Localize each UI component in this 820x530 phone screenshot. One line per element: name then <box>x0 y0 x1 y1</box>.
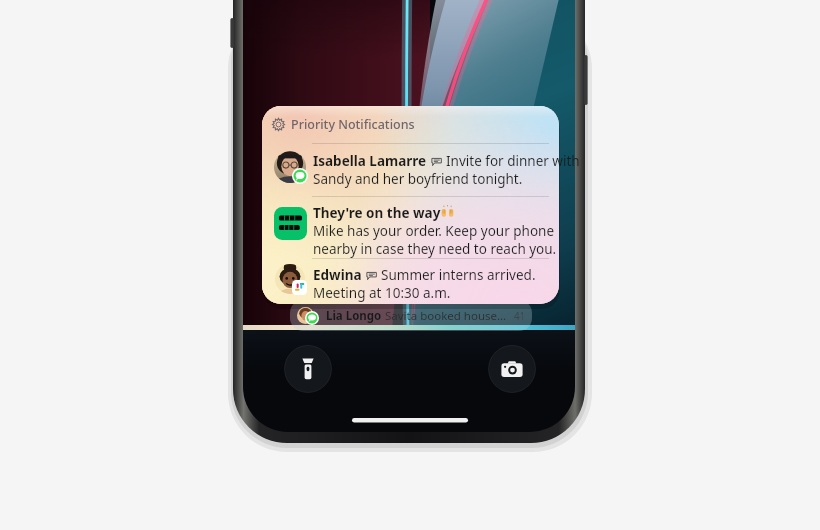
button[interactable]: Camera <box>488 345 536 393</box>
staticText: Priority Notifications <box>291 116 415 133</box>
staticText: nearby in case they need to reach you. <box>313 240 557 258</box>
staticText: Lia Longo <box>326 308 382 324</box>
staticText: Savita booked house… <box>385 308 507 324</box>
staticText: Isabella Lamarre <box>313 152 427 170</box>
button[interactable]: Edwina <box>262 261 559 304</box>
staticText: Sandy and her boyfriend tonight. <box>313 170 523 188</box>
staticText: Invite for dinner with <box>446 152 580 170</box>
button[interactable]: They're on the way <box>262 199 559 258</box>
staticText: Mike has your order. Keep your phone <box>313 222 555 240</box>
staticText: 41m ago <box>514 309 523 323</box>
button[interactable]: Lia Longo <box>290 300 532 331</box>
button[interactable]: Isabella Lamarre <box>262 146 559 196</box>
staticText: Meeting at 10:30 a.m. <box>313 284 451 302</box>
staticText: Edwina <box>313 266 362 284</box>
staticText: Summer interns arrived. <box>381 266 536 284</box>
button[interactable]: Flashlight <box>284 345 332 393</box>
button[interactable]: Priority Notifications <box>272 116 522 136</box>
staticText: They're on the way <box>313 204 441 222</box>
